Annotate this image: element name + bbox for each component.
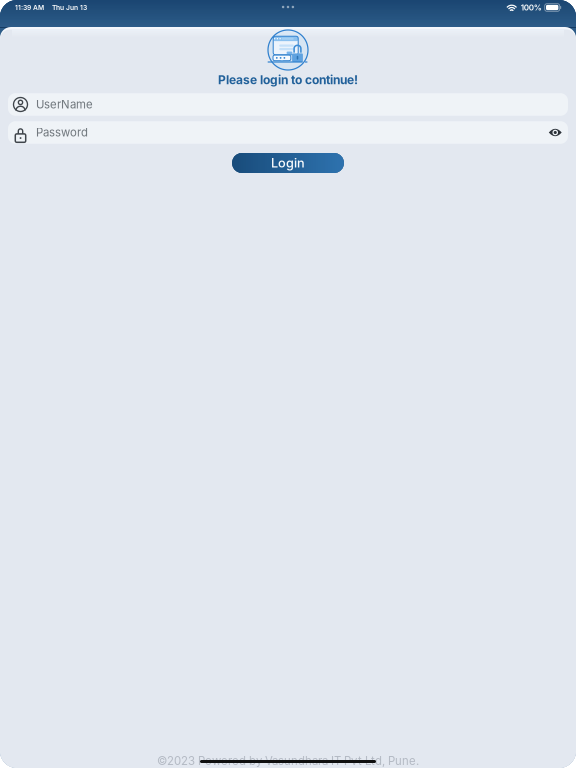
staticText: ©2023 Powered by Vasundhara IT Pvt Ltd, … [157, 754, 419, 768]
staticText: Please login to continue! [218, 73, 358, 87]
staticText: UserName [36, 98, 93, 111]
staticText: Login [271, 155, 305, 171]
staticText: 100% [521, 3, 542, 12]
button[interactable]: Login [232, 153, 344, 173]
button[interactable]: Password [8, 121, 568, 144]
staticText: Thu Jun 13 [52, 3, 87, 12]
button[interactable]: UserName [8, 93, 568, 116]
staticText: 11:39 AM [15, 3, 44, 12]
staticText: Password [36, 126, 88, 139]
